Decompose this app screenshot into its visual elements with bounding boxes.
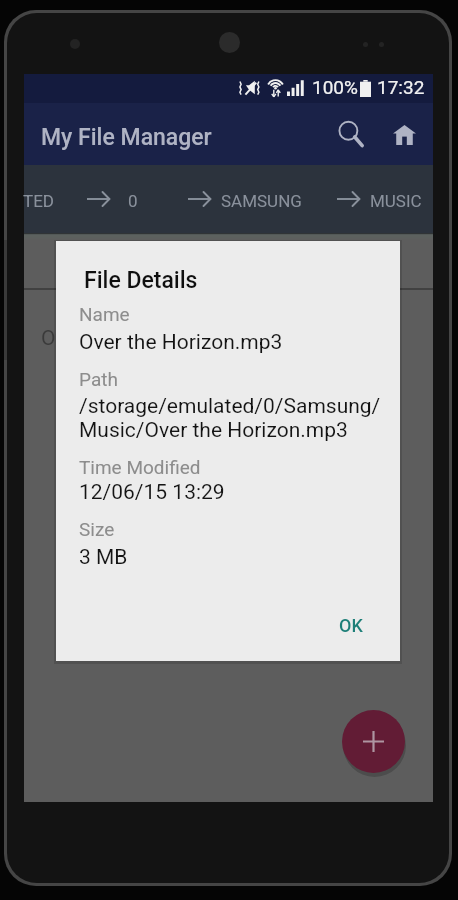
staticText: Over the Horizon.mp3 bbox=[41, 326, 245, 351]
staticText: Time Modified bbox=[79, 456, 201, 478]
button[interactable]: MUSIC bbox=[359, 165, 433, 234]
button[interactable]: Add new file bbox=[342, 710, 405, 773]
staticText: 12/06/15 13:29 bbox=[79, 480, 225, 505]
staticText: Path bbox=[79, 368, 118, 390]
staticText: Over the Horizon.mp3 bbox=[79, 330, 283, 355]
button[interactable]: Home bbox=[380, 111, 428, 159]
staticText: OK bbox=[339, 615, 363, 636]
button[interactable]: Over the Horizon.mp3 bbox=[24, 290, 433, 364]
button[interactable] bbox=[24, 241, 433, 288]
staticText: /storage/emulated/0/Samsung/ bbox=[79, 394, 381, 419]
button[interactable]: 0 bbox=[115, 165, 151, 234]
staticText: Name bbox=[79, 303, 130, 325]
staticText: TED bbox=[23, 191, 54, 211]
staticText: My File Manager bbox=[41, 124, 212, 151]
staticText: Size bbox=[79, 518, 115, 540]
button[interactable]: SAMSUNG bbox=[211, 165, 311, 234]
button[interactable]: OK bbox=[323, 605, 379, 645]
staticText: File Details bbox=[84, 267, 198, 294]
staticText: MUSIC bbox=[370, 191, 422, 211]
staticText: 3 MB bbox=[79, 545, 128, 570]
staticText: SAMSUNG bbox=[221, 191, 302, 211]
staticText: 100% bbox=[312, 76, 358, 98]
staticText: 0 bbox=[128, 191, 138, 211]
staticText: 17:32 bbox=[377, 76, 425, 98]
button[interactable]: TED bbox=[11, 165, 65, 234]
button[interactable]: Search bbox=[327, 110, 375, 158]
staticText: Music/Over the Horizon.mp3 bbox=[79, 418, 348, 443]
